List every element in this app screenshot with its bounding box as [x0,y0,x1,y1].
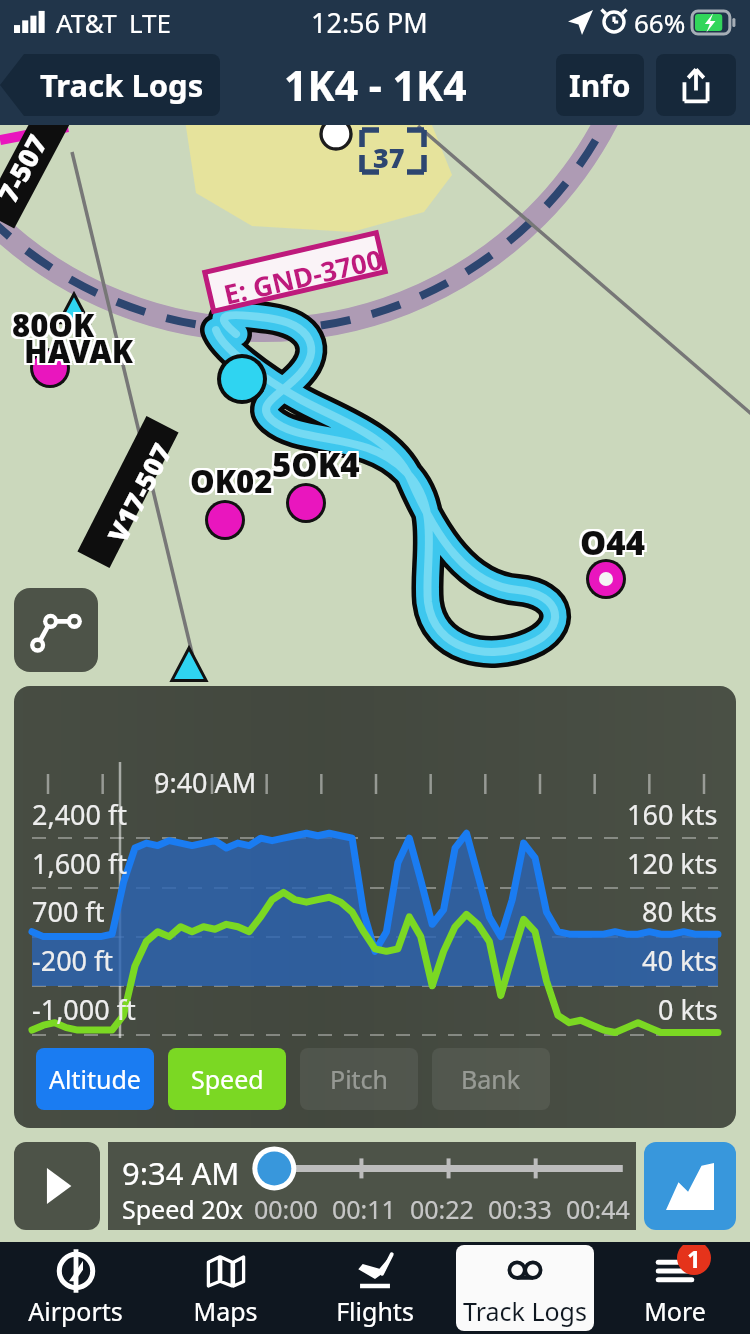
button[interactable]: Altitude [36,1048,154,1110]
staticText: 80OK [14,306,97,348]
button[interactable]: Maps [156,1245,294,1331]
staticText: E: GND-3700 [220,240,386,313]
staticText: 1 [687,1245,701,1275]
staticText: 9:34 AM [122,1152,240,1194]
staticText: O44 [582,522,647,567]
staticText: 80OK [10,302,93,344]
staticText: O44 [582,518,647,563]
staticText: HAVAK [24,330,134,372]
staticText: Pitch [330,1062,389,1096]
staticText: 80OK [14,302,97,344]
staticText: OK02 [190,458,273,500]
staticText: 700 ft [32,893,105,930]
staticText: OK02 [188,460,271,502]
staticText: 9:40 AM [154,764,257,801]
staticText: 5OK4 [270,442,358,487]
staticText: OK02 [188,462,271,504]
staticText: 120 kts [627,845,718,882]
staticText: 1K4 - 1K4 [284,57,467,113]
staticText: AT&T [56,5,117,40]
staticText: Info [569,65,631,106]
staticText: O44 [580,518,645,563]
staticText: 160 kts [627,796,718,833]
staticText: 5OK4 [274,440,362,485]
button[interactable]: 1 [606,1245,744,1331]
staticText: 80OK [10,304,93,346]
button[interactable]: Share [656,54,736,116]
staticText: 40 kts [642,942,718,979]
staticText: 00:44 [566,1192,630,1226]
staticText: HAVAK [22,330,132,372]
staticText: 5OK4 [270,440,358,485]
staticText: O44 [578,520,643,565]
staticText: O44 [578,518,643,563]
staticText: -200 ft [32,942,114,979]
staticText: HAVAK [22,332,132,374]
staticText: 80OK [14,304,97,346]
staticText: 37 [373,139,405,176]
staticText: 5OK4 [270,444,358,489]
staticText: Flights [336,1294,414,1328]
staticText: 0 kts [658,991,718,1028]
staticText: HAVAK [26,328,136,370]
staticText: Maps [193,1294,258,1328]
staticText: HAVAK [26,332,136,374]
staticText: Speed 20x [122,1192,244,1226]
staticText: Altitude [49,1062,141,1096]
staticText: OK02 [192,458,275,500]
staticText: O44 [578,522,643,567]
staticText: HAVAK [22,328,132,370]
button[interactable]: Route layers [14,588,98,672]
staticText: O44 [582,520,647,565]
staticText: 80OK [12,304,95,346]
button[interactable]: Toggle chart [644,1142,736,1230]
button[interactable]: Pitch [300,1048,418,1110]
staticText: HAVAK [24,328,134,370]
staticText: 12:56 PM [311,4,428,41]
staticText: Bank [461,1062,521,1096]
staticText: -1,000 ft [32,991,136,1028]
staticText: Speed [191,1062,264,1096]
button[interactable]: Airports [6,1245,144,1331]
staticText: O44 [580,520,645,565]
button[interactable]: Speed [168,1048,286,1110]
staticText: 5OK4 [274,442,362,487]
button[interactable]: Bank [432,1048,550,1110]
staticText: 5OK4 [272,442,360,487]
staticText: OK02 [192,462,275,504]
staticText: OK02 [188,458,271,500]
staticText: 80OK [10,306,93,348]
button[interactable]: Info [556,54,644,116]
staticText: 80OK [12,302,95,344]
staticText: 2,400 ft [32,796,128,833]
staticText: 5OK4 [272,440,360,485]
staticText: Track Logs [40,64,204,106]
staticText: 5OK4 [272,444,360,489]
staticText: O44 [580,522,645,567]
staticText: OK02 [192,460,275,502]
button[interactable]: Flights [306,1245,444,1331]
staticText: 80 kts [642,893,718,930]
staticText: Airports [28,1294,123,1328]
button[interactable]: Play [14,1142,100,1230]
button[interactable]: Track Logs [0,54,220,116]
staticText: 00:00 [254,1192,318,1226]
staticText: 00:33 [488,1192,552,1226]
staticText: OK02 [190,462,273,504]
staticText: LTE [129,5,172,40]
staticText: HAVAK [24,332,134,374]
button[interactable]: Track Logs [456,1245,594,1331]
staticText: OK02 [190,460,273,502]
staticText: 7-507 [0,128,55,209]
button[interactable]: 9:34 AM [108,1142,636,1230]
staticText: 00:22 [410,1192,474,1226]
staticText: More [644,1294,706,1328]
staticText: 66% [634,5,686,40]
staticText: V17-507 [99,436,180,548]
staticText: HAVAK [26,330,136,372]
staticText: Track Logs [463,1294,587,1328]
staticText: 00:11 [332,1192,396,1226]
staticText: 5OK4 [274,444,362,489]
staticText: 1,600 ft [32,845,128,882]
staticText: 80OK [12,306,95,348]
